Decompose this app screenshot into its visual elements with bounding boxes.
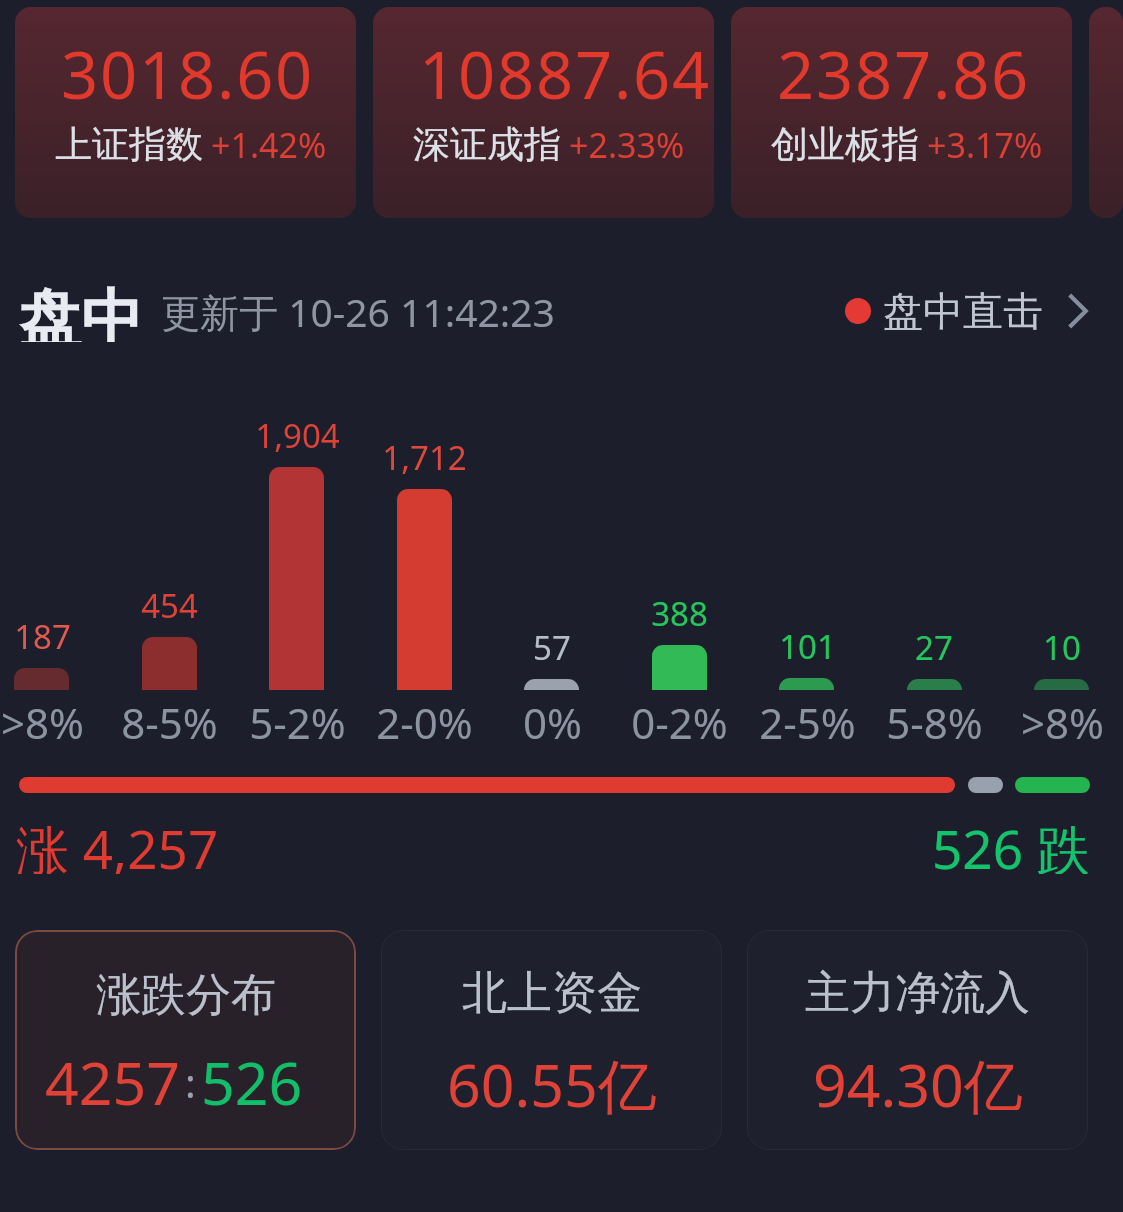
staticText: +3.17% [927, 122, 1043, 168]
staticText: 盘中 [19, 280, 143, 342]
button[interactable]: 0-2% 388 [615, 404, 743, 744]
staticText: 388 [651, 591, 708, 636]
button[interactable]: 主力净流入 [747, 930, 1088, 1150]
staticText: 2-0% [376, 694, 473, 744]
staticText: 5-2% [249, 694, 346, 744]
staticText: 5-8% [886, 694, 983, 744]
staticText: 0% [523, 694, 582, 744]
button[interactable]: 5-8% 27 [870, 404, 998, 744]
staticText: 10887.64 [419, 30, 712, 119]
other: 盘中直击 [1065, 288, 1091, 334]
button[interactable]: 盘中直击 [845, 286, 1091, 336]
staticText: : [185, 1055, 196, 1109]
staticText: 27 [915, 625, 953, 670]
staticText: 上证指数 [55, 121, 203, 168]
staticText: 0-2% [631, 694, 728, 744]
staticText: 2387.86 [777, 30, 1031, 119]
button[interactable]: 涨跌分布 [15, 930, 356, 1150]
staticText: 526 跌 [932, 812, 1090, 874]
staticText: 主力净流入 [805, 965, 1030, 1022]
staticText: 454 [141, 583, 198, 628]
staticText: 涨跌分布 [96, 967, 276, 1024]
staticText: 深证成指 [413, 121, 561, 168]
staticText: 1,712 [382, 435, 467, 480]
button[interactable]: 2-5% 101 [743, 404, 871, 744]
staticText: 187 [14, 614, 71, 659]
staticText: 3018.60 [61, 30, 315, 119]
staticText: 创业板指 [771, 121, 919, 168]
staticText: >8% [1, 694, 84, 744]
button[interactable]: >8% 10 [998, 404, 1123, 744]
staticText: 8-5% [121, 694, 218, 744]
staticText: 盘中直击 [883, 286, 1043, 336]
button[interactable]: 2387.86 [731, 7, 1072, 218]
staticText: +2.33% [569, 122, 685, 168]
staticText: 101 [779, 624, 836, 669]
staticText: 1,904 [255, 413, 340, 458]
staticText: 4257 [45, 1042, 180, 1122]
staticText: 北上资金 [462, 965, 642, 1022]
button[interactable]: 1288.55 [1089, 7, 1123, 218]
button[interactable]: 2-0% 1,712 [360, 404, 488, 744]
staticText: 60.55亿 [447, 1044, 657, 1125]
button[interactable]: >8% 187 [0, 404, 106, 744]
staticText: 526 [201, 1042, 303, 1122]
staticText: 94.30亿 [813, 1044, 1023, 1125]
button[interactable]: 8-5% 454 [105, 404, 233, 744]
button[interactable]: 北上资金 [381, 930, 722, 1150]
staticText: >8% [1021, 694, 1104, 744]
staticText: 57 [533, 625, 571, 670]
staticText: +1.42% [211, 122, 327, 168]
staticText: 10 [1043, 625, 1081, 670]
staticText: 2-5% [759, 694, 856, 744]
button[interactable]: 5-2% 1,904 [233, 404, 361, 744]
button[interactable]: 3018.60 [15, 7, 356, 218]
staticText: 更新于 10-26 11:42:23 [161, 285, 555, 338]
button[interactable]: 10887.64 [373, 7, 714, 218]
button[interactable]: 0% 57 [488, 404, 616, 744]
staticText: 涨 4,257 [16, 812, 219, 874]
